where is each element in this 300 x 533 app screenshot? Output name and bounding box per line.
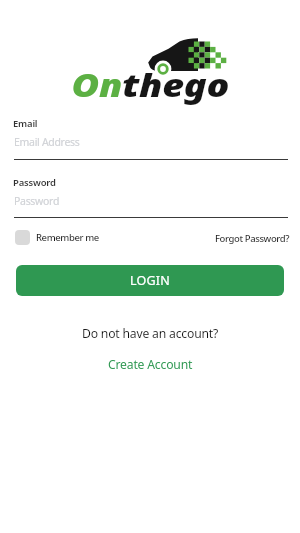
staticText: Onthego bbox=[71, 62, 230, 106]
button[interactable]: Remember me bbox=[15, 230, 99, 245]
button[interactable]: Create Account bbox=[108, 356, 193, 373]
staticText: Remember me bbox=[36, 231, 99, 244]
staticText: Email Address bbox=[14, 135, 80, 149]
staticText: Do not have an account? bbox=[82, 325, 219, 342]
button[interactable]: LOGIN bbox=[16, 265, 284, 296]
staticText: Password bbox=[14, 194, 60, 208]
staticText: Email bbox=[13, 117, 38, 130]
staticText: LOGIN bbox=[130, 272, 170, 289]
button[interactable]: Forgot Password? bbox=[215, 232, 290, 245]
staticText: Password bbox=[13, 176, 56, 189]
